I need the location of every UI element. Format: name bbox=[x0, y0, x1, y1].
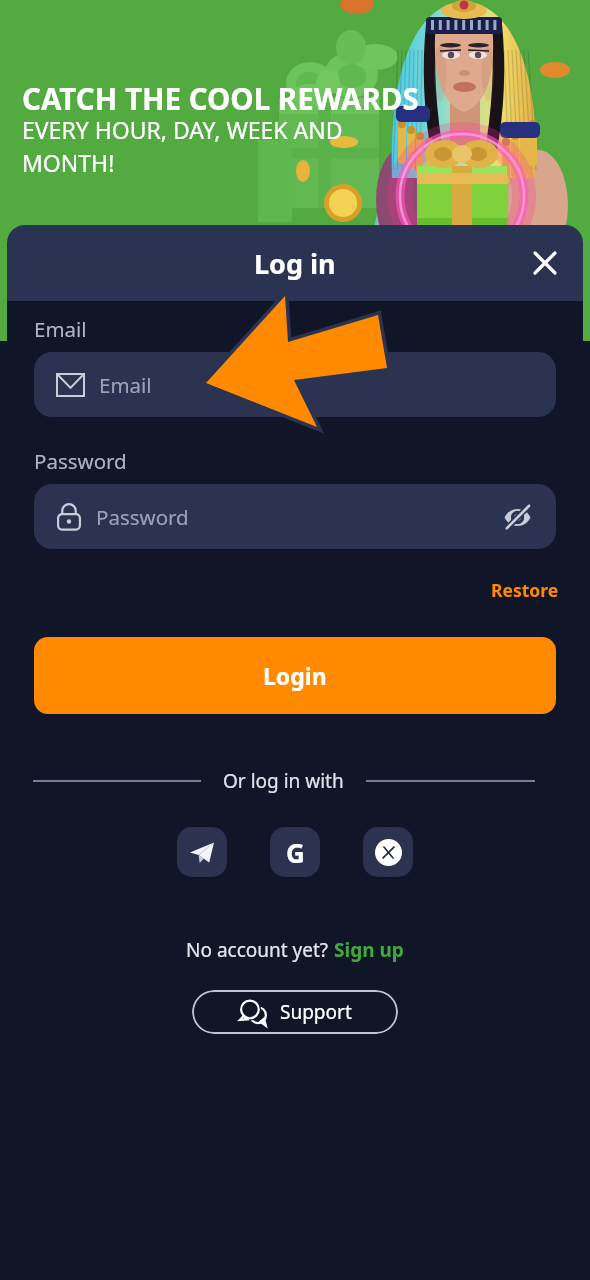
staticText: Login bbox=[263, 660, 327, 691]
button[interactable]: Restore bbox=[487, 574, 563, 606]
button[interactable]: Show password bbox=[500, 500, 534, 534]
staticText: Password bbox=[34, 447, 127, 475]
button[interactable]: Close bbox=[525, 243, 565, 283]
button[interactable]: X bbox=[363, 827, 413, 877]
staticText: EVERY HOUR, DAY, WEEK AND MONTH! bbox=[22, 114, 343, 178]
staticText: Or log in with bbox=[223, 768, 344, 794]
staticText: No account yet? bbox=[186, 937, 334, 963]
button[interactable]: Sign up bbox=[334, 937, 404, 963]
button[interactable]: Support bbox=[192, 990, 398, 1034]
staticText: Password bbox=[96, 503, 189, 531]
staticText: Support bbox=[280, 999, 352, 1025]
button[interactable]: Email bbox=[34, 352, 556, 417]
staticText: G bbox=[286, 835, 305, 870]
staticText: Sign up bbox=[334, 937, 404, 963]
button[interactable]: Telegram bbox=[177, 827, 227, 877]
staticText: Restore bbox=[491, 578, 559, 602]
button[interactable]: Password bbox=[34, 484, 556, 549]
button[interactable]: Google bbox=[270, 827, 320, 877]
staticText: Email bbox=[34, 315, 87, 343]
staticText: Log in bbox=[254, 245, 336, 282]
staticText: CATCH THE COOL REWARDS bbox=[22, 78, 419, 118]
staticText: Email bbox=[99, 371, 152, 399]
button[interactable]: Login bbox=[34, 637, 556, 714]
